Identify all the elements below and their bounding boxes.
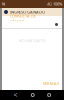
staticText: VER MAS	[43, 81, 59, 86]
staticText: <	[14, 91, 18, 99]
staticText: N	[2, 1, 5, 7]
staticText: CONSULTA DE SALDOS	[10, 13, 36, 24]
staticText: 100%	[53, 1, 62, 7]
staticText: NO HAY DATOS	[18, 38, 45, 43]
staticText: 4G	[47, 1, 52, 7]
staticText: INGRESO GANADO	[10, 9, 45, 15]
